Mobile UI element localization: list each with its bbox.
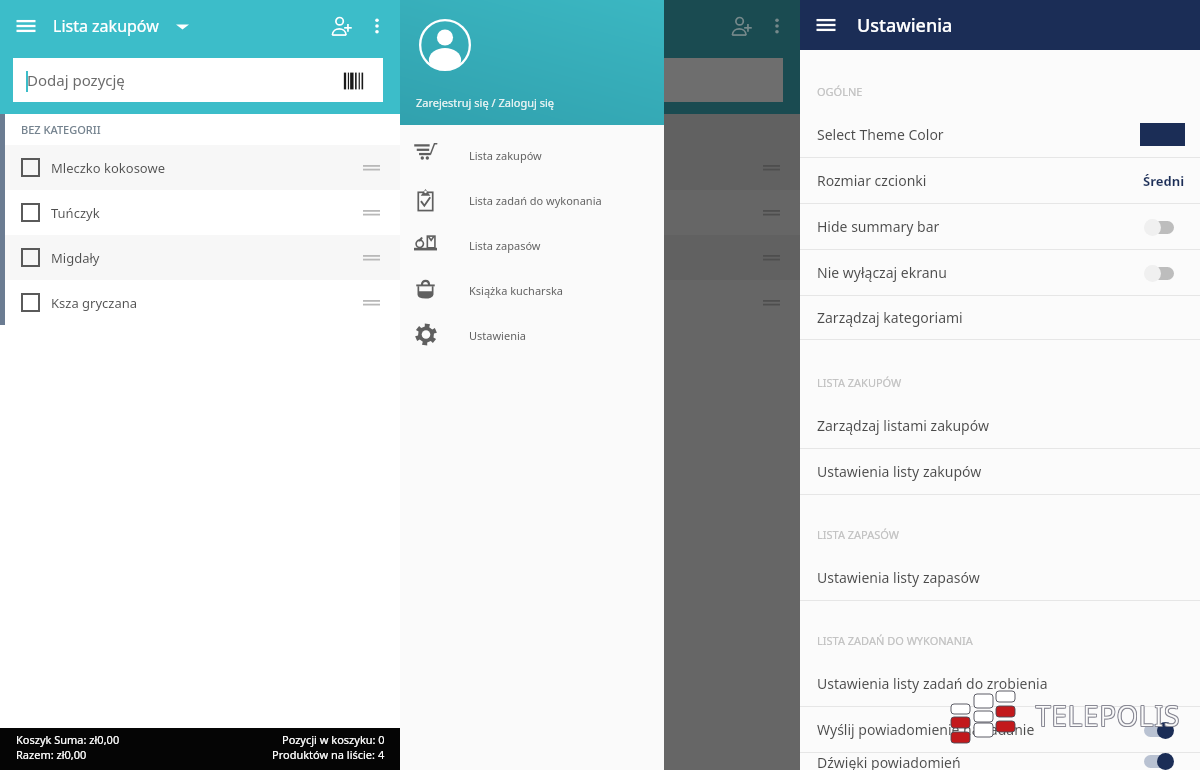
button[interactable]: Menu — [4, 4, 48, 48]
staticText: Ustawienia — [469, 328, 526, 343]
staticText: Lista zadań do wykonania — [469, 193, 602, 208]
staticText: Dodaj pozycję — [27, 70, 125, 90]
button[interactable]: Toggle — [1144, 217, 1185, 237]
button[interactable]: Zarządzaj kategoriami — [800, 296, 1200, 339]
staticText: Ksza gryczana — [51, 294, 138, 312]
button[interactable]: Zarządzaj listami zakupów — [800, 403, 1200, 448]
button[interactable]: Check Ksza gryczana — [5, 280, 400, 325]
staticText: TELEPOLIS — [1035, 696, 1180, 733]
staticText: Średni — [1143, 172, 1185, 190]
button[interactable]: More options — [363, 12, 391, 40]
staticText: Ustawienia — [857, 13, 953, 38]
staticText: Koszyk Suma: zł0,00 — [16, 732, 120, 747]
button[interactable]: Rozmiar czcionki — [800, 158, 1200, 203]
staticText: Dźwięki powiadomień — [817, 753, 961, 770]
staticText: BEZ KATEGORII — [21, 122, 101, 137]
staticText: Razem: zł0,00 — [16, 747, 87, 762]
staticText: Pozycji w koszyku: 0 — [282, 732, 385, 747]
staticText: Lista zakupów — [53, 15, 159, 37]
button[interactable]: Książka kucharska — [400, 268, 664, 313]
staticText: LISTA ZAKUPÓW — [817, 375, 902, 390]
button[interactable]: Nie wyłączaj ekranu — [800, 250, 1200, 295]
staticText: LISTA ZAPASÓW — [817, 527, 899, 542]
button[interactable]: Lista zadań do wykonania — [400, 178, 664, 223]
button[interactable]: Check Mleczko kokosowe — [5, 145, 400, 190]
staticText: Lista zapasów — [469, 238, 541, 253]
staticText: TELEPOLIS — [1037, 698, 1182, 735]
button[interactable]: Dźwięki powiadomień — [800, 753, 1200, 770]
button[interactable]: Ustawienia listy zakupów — [800, 449, 1200, 494]
button[interactable]: Ustawienia — [400, 313, 664, 358]
staticText: Ustawienia listy zakupów — [817, 462, 982, 481]
button[interactable]: Check Ksza gryczana — [21, 293, 40, 312]
button[interactable]: Toggle — [1144, 263, 1185, 283]
staticText: Produktów na liście: 4 — [272, 747, 385, 762]
staticText: TELEPOLIS — [1037, 696, 1182, 733]
staticText: Migdały — [51, 249, 100, 267]
staticText: TELEPOLIS — [1035, 697, 1180, 734]
staticText: Hide summary bar — [817, 217, 940, 236]
button[interactable]: Check Tuńczyk — [5, 190, 400, 235]
button[interactable]: Ustawienia listy zadań do zrobienia — [800, 661, 1200, 706]
button[interactable]: Scan barcode — [341, 70, 365, 91]
button[interactable]: Lista zapasów — [400, 223, 664, 268]
button[interactable]: Select Theme Color — [800, 112, 1200, 157]
button[interactable]: Menu — [804, 3, 848, 47]
staticText: Tuńczyk — [51, 204, 100, 222]
staticText: Zarządzaj listami zakupów — [817, 416, 989, 435]
staticText: Mleczko kokosowe — [51, 159, 166, 177]
button[interactable]: Wyślij powiadomienie na zadanie — [800, 707, 1200, 752]
staticText: TELEPOLIS — [1035, 698, 1180, 735]
button[interactable]: Check Mleczko kokosowe — [21, 158, 40, 177]
staticText: LISTA ZADAŃ DO WYKONANIA — [817, 633, 973, 648]
button[interactable]: Check Migdały — [21, 248, 40, 267]
button[interactable]: Ustawienia listy zapasów — [800, 555, 1200, 600]
staticText: TELEPOLIS — [1037, 697, 1182, 734]
button[interactable]: Reorder — [356, 288, 386, 318]
staticText: TELEPOLIS — [1036, 696, 1181, 733]
staticText: Rozmiar czcionki — [817, 171, 927, 190]
staticText: Zarządzaj kategoriami — [817, 308, 963, 327]
staticText: Ustawienia listy zadań do zrobienia — [817, 674, 1048, 693]
staticText: Ustawienia listy zapasów — [817, 568, 980, 587]
button[interactable]: Dodaj pozycję — [13, 58, 383, 102]
button[interactable]: Reorder — [356, 198, 386, 228]
staticText: Select Theme Color — [817, 125, 944, 144]
staticText: TELEPOLIS — [1036, 697, 1181, 734]
staticText: OGÓLNE — [817, 84, 863, 99]
button[interactable]: Add person — [322, 7, 360, 45]
button[interactable]: Lista zakupów — [400, 133, 664, 178]
staticText: Wyślij powiadomienie na zadanie — [817, 720, 1035, 739]
staticText: Zarejestruj się / Zaloguj się — [416, 95, 554, 110]
button[interactable]: Choose list — [169, 13, 195, 39]
button[interactable]: Check Migdały — [5, 235, 400, 280]
staticText: Lista zakupów — [469, 148, 542, 163]
button[interactable]: Hide summary bar — [800, 204, 1200, 249]
staticText: TELEPOLIS — [1036, 698, 1181, 735]
staticText: Nie wyłączaj ekranu — [817, 263, 947, 282]
staticText: Książka kucharska — [469, 283, 563, 298]
button[interactable]: Toggle — [1144, 720, 1185, 740]
button[interactable]: Check Tuńczyk — [21, 203, 40, 222]
button[interactable]: Reorder — [356, 153, 386, 183]
button[interactable]: Toggle — [1144, 753, 1185, 770]
button[interactable]: Reorder — [356, 243, 386, 273]
